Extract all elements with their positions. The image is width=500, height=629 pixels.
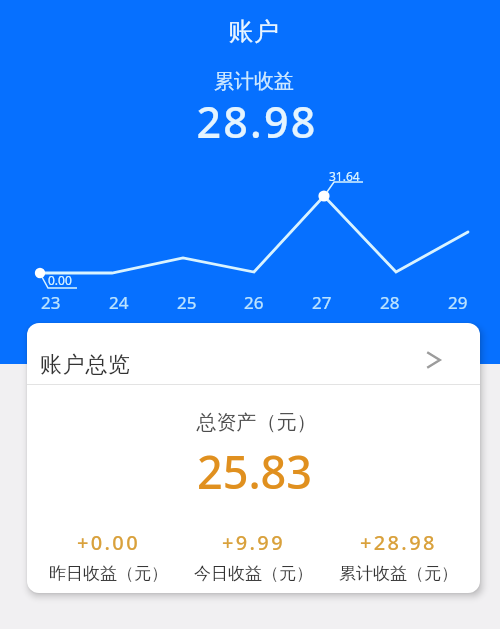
button[interactable]: +0.00 bbox=[36, 529, 181, 584]
staticText: 0.00 bbox=[48, 272, 72, 288]
staticText: 账户 bbox=[4, 16, 500, 47]
button[interactable]: 账户总览 bbox=[27, 323, 480, 384]
staticText: 28 bbox=[380, 291, 400, 314]
staticText: 23 bbox=[41, 291, 61, 314]
staticText: 27 bbox=[312, 291, 332, 314]
staticText: 24 bbox=[109, 291, 129, 314]
staticText: +0.00 bbox=[77, 529, 140, 556]
button[interactable]: +28.98 bbox=[326, 529, 471, 584]
staticText: 今日收益（元） bbox=[194, 563, 313, 584]
staticText: +9.99 bbox=[222, 529, 285, 556]
button[interactable]: +9.99 bbox=[181, 529, 326, 584]
staticText: 账户总览 bbox=[40, 351, 131, 379]
staticText: 累计收益 bbox=[4, 69, 500, 94]
staticText: +28.98 bbox=[360, 529, 437, 556]
staticText: 总资产（元） bbox=[30, 410, 480, 435]
staticText: 31.64 bbox=[329, 168, 360, 184]
other: 账户总览详情 bbox=[426, 351, 441, 369]
staticText: 29 bbox=[448, 291, 468, 314]
staticText: 累计收益（元） bbox=[339, 563, 458, 584]
staticText: 25 bbox=[177, 291, 197, 314]
staticText: 昨日收益（元） bbox=[49, 563, 168, 584]
staticText: 25.83 bbox=[28, 441, 480, 502]
staticText: 28.98 bbox=[7, 92, 500, 151]
staticText: 26 bbox=[244, 291, 264, 314]
